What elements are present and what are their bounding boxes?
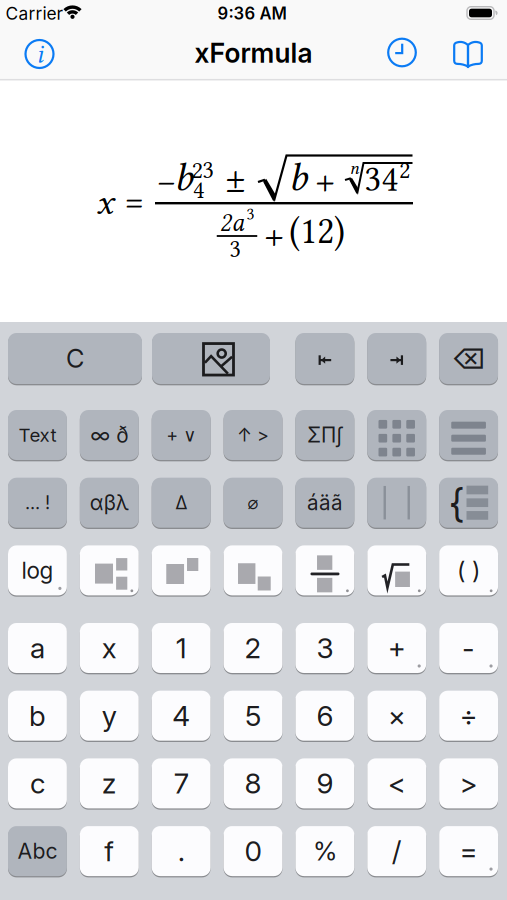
button[interactable]: Multiline: [439, 410, 498, 460]
button[interactable]: Matrix: [367, 410, 426, 460]
staticText: 9: [316, 766, 333, 800]
button[interactable]: b: [8, 691, 67, 741]
staticText: ... !: [25, 492, 50, 514]
button[interactable]: 8: [224, 758, 282, 808]
button[interactable]: /: [367, 826, 426, 876]
staticText: 6: [316, 699, 333, 733]
button[interactable]: Library: [453, 40, 483, 66]
button[interactable]: 6: [295, 691, 354, 741]
button[interactable]: 3: [295, 623, 354, 673]
button[interactable]: <: [367, 758, 426, 808]
button[interactable]: 2: [224, 623, 282, 673]
button[interactable]: =: [439, 826, 498, 876]
button[interactable]: Parentheses: [439, 545, 498, 595]
staticText: 1: [176, 631, 187, 665]
button[interactable]: 1: [152, 623, 211, 673]
button[interactable]: +: [367, 623, 426, 673]
button[interactable]: 0: [224, 826, 282, 876]
button[interactable]: ⌀: [224, 478, 282, 528]
button[interactable]: %: [295, 826, 354, 876]
button[interactable]: 5: [224, 691, 282, 741]
staticText: 8: [244, 766, 261, 800]
button[interactable]: Delete: [439, 333, 498, 384]
staticText: log: [21, 557, 53, 584]
button[interactable]: ΣΠ∫: [295, 410, 354, 460]
staticText: b: [288, 155, 307, 200]
staticText: y: [102, 699, 117, 733]
button[interactable]: About: [24, 39, 54, 69]
staticText: =: [460, 834, 478, 868]
button[interactable]: ∞ ð: [80, 410, 139, 460]
button[interactable]: Move to end: [367, 333, 426, 384]
button[interactable]: Subscript: [224, 545, 282, 595]
button[interactable]: >: [439, 758, 498, 808]
button[interactable]: Abc: [8, 826, 67, 876]
staticText: 9:36 AM: [217, 3, 286, 24]
button[interactable]: z: [80, 758, 139, 808]
button[interactable]: αβλ: [80, 478, 139, 528]
button[interactable]: Absolute value: [367, 478, 426, 528]
staticText: i: [36, 39, 43, 69]
button[interactable]: Fraction: [295, 545, 354, 595]
button[interactable]: Cases: [439, 478, 498, 528]
staticText: Carrier: [5, 3, 63, 24]
staticText: =: [124, 181, 143, 221]
staticText: Text: [18, 424, 56, 446]
button[interactable]: Δ: [152, 478, 211, 528]
staticText: Abc: [17, 838, 57, 864]
button[interactable]: ÷: [439, 691, 498, 741]
staticText: ⌀: [247, 492, 258, 513]
button[interactable]: .: [152, 826, 211, 876]
button[interactable]: 7: [152, 758, 211, 808]
button[interactable]: + ∨: [152, 410, 211, 460]
button[interactable]: 9: [295, 758, 354, 808]
staticText: ⌫: [452, 342, 486, 375]
staticText: Δ: [175, 492, 187, 514]
staticText: +: [314, 159, 335, 203]
staticText: ∞ ð: [90, 422, 128, 448]
button[interactable]: History: [386, 36, 418, 68]
staticText: 7: [174, 766, 189, 800]
staticText: a: [30, 631, 45, 665]
staticText: 34: [364, 158, 398, 199]
button[interactable]: -: [439, 623, 498, 673]
staticText: C: [66, 343, 84, 374]
button[interactable]: Subscript and superscript: [80, 545, 139, 595]
button[interactable]: a: [8, 623, 67, 673]
staticText: 23: [191, 156, 213, 184]
button[interactable]: Move to start: [295, 333, 354, 384]
staticText: /: [392, 834, 402, 868]
staticText: ÷: [460, 699, 478, 733]
staticText: 0: [244, 834, 261, 868]
staticText: ×: [388, 699, 406, 733]
staticText: {: [449, 479, 464, 526]
button[interactable]: Snapshot: [152, 333, 270, 384]
staticText: b: [29, 699, 46, 733]
button[interactable]: log: [8, 545, 67, 595]
button[interactable]: c: [8, 758, 67, 808]
button[interactable]: x: [80, 623, 139, 673]
staticText: >: [460, 766, 478, 800]
staticText: xFormula: [194, 37, 312, 69]
button[interactable]: Superscript: [152, 545, 211, 595]
staticText: 2: [399, 156, 410, 184]
button[interactable]: 4: [152, 691, 211, 741]
staticText: +: [263, 213, 284, 258]
button[interactable]: ... !: [8, 478, 67, 528]
button[interactable]: áäã: [295, 478, 354, 528]
staticText: <: [388, 766, 406, 800]
button[interactable]: Text: [8, 410, 67, 460]
button[interactable]: ↑ >: [224, 410, 282, 460]
button[interactable]: y: [80, 691, 139, 741]
button[interactable]: f: [80, 826, 139, 876]
staticText: 3: [316, 631, 333, 665]
staticText: b: [174, 155, 193, 200]
staticText: n: [349, 157, 359, 179]
button[interactable]: ×: [367, 691, 426, 741]
button[interactable]: Clear: [8, 333, 142, 384]
staticText: 4: [172, 699, 190, 733]
staticText: áäã: [307, 490, 343, 515]
staticText: 4: [193, 176, 204, 204]
button[interactable]: Square root: [367, 545, 426, 595]
staticText: 3: [246, 204, 254, 224]
